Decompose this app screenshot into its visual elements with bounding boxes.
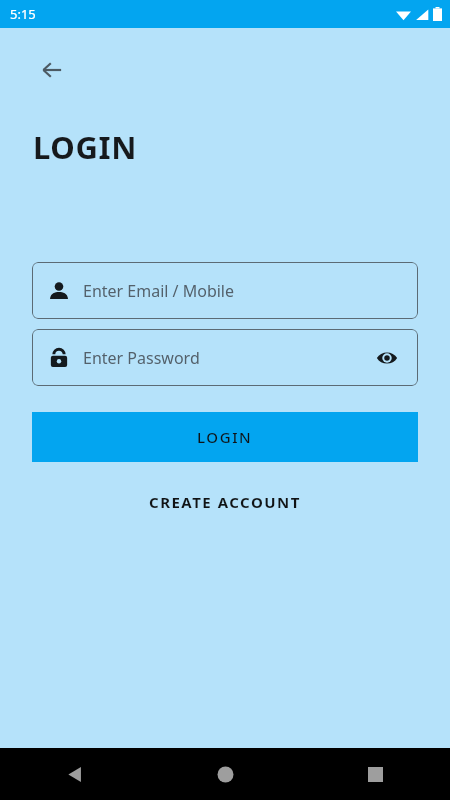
staticText: LOGIN (197, 427, 253, 447)
button[interactable]: Show password (372, 343, 402, 373)
button[interactable]: Back (30, 48, 74, 92)
staticText: CREATE ACCOUNT (149, 492, 301, 512)
staticText: Enter Password (83, 347, 200, 369)
staticText: LOGIN (33, 126, 137, 168)
button[interactable]: Back (0, 748, 150, 800)
button[interactable]: CREATE ACCOUNT (139, 486, 311, 518)
button[interactable]: LOGIN (32, 412, 418, 462)
staticText: Enter Email / Mobile (83, 280, 235, 302)
button[interactable]: Home (150, 748, 300, 800)
button[interactable]: Enter Email / Mobile (32, 262, 418, 319)
staticText: 5:15 (10, 5, 36, 23)
button[interactable]: Enter Password (32, 329, 418, 386)
button[interactable]: Recent apps (300, 748, 450, 800)
